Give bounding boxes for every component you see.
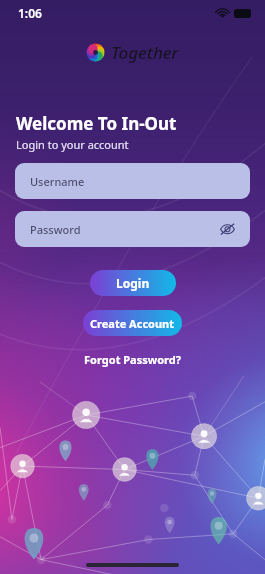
staticText: Forgot Password? [84, 352, 181, 367]
button[interactable]: Login [90, 270, 176, 296]
button[interactable]: Password [15, 211, 250, 247]
staticText: Create Account [90, 316, 175, 331]
button[interactable]: Show password [216, 218, 238, 240]
button[interactable]: Username [15, 163, 250, 199]
staticText: 1:06 [18, 5, 42, 21]
staticText: Together [111, 41, 179, 64]
button[interactable]: Create Account [83, 310, 182, 336]
staticText: Login to your account [16, 137, 129, 152]
staticText: Password [30, 222, 81, 237]
button[interactable]: Forgot Password? [80, 348, 185, 371]
staticText: Username [30, 174, 85, 189]
staticText: Welcome To In-Out [16, 112, 177, 135]
staticText: Login [116, 275, 150, 291]
